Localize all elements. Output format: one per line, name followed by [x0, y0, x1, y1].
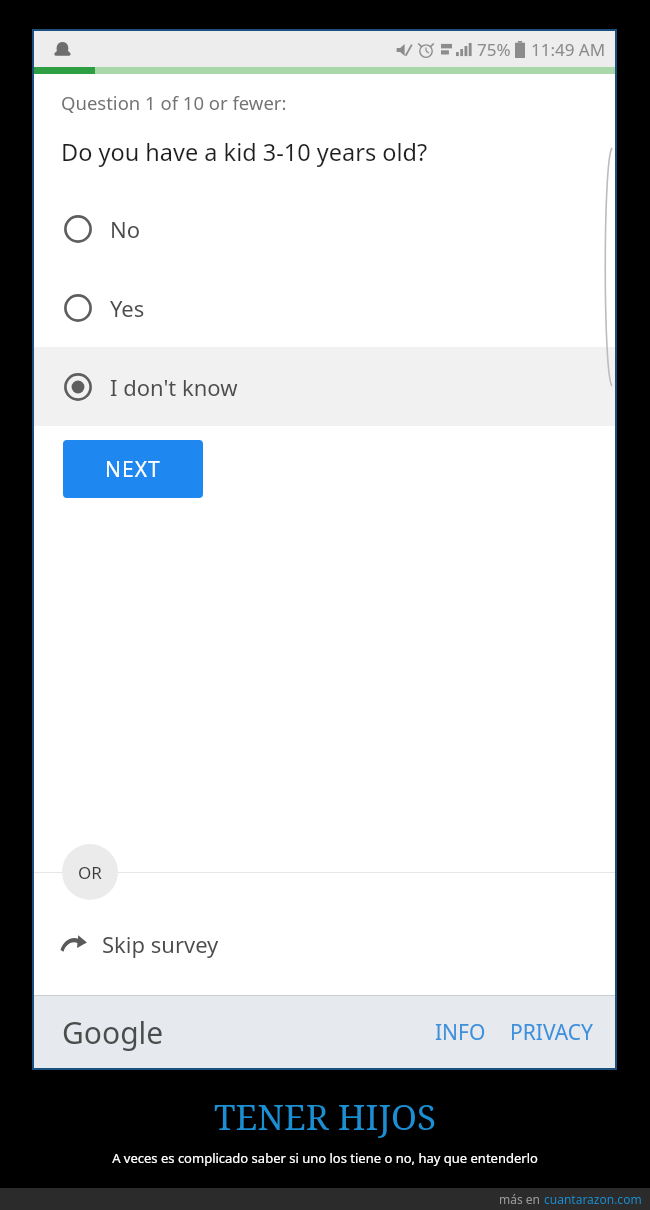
staticText: cuantarazon.com	[544, 1191, 642, 1207]
staticText: Question 1 of 10 or fewer:	[61, 90, 287, 115]
staticText: Skip survey	[102, 929, 219, 959]
button[interactable]: Google	[34, 1012, 164, 1053]
staticText: OR	[78, 861, 102, 884]
button[interactable]: Skip survey	[34, 923, 615, 965]
other: Skip survey	[59, 929, 89, 959]
staticText: Yes	[110, 293, 145, 323]
staticText: NEXT	[105, 455, 161, 484]
button[interactable]: Yes	[34, 268, 615, 347]
button[interactable]: INFO	[427, 1010, 494, 1055]
staticText: I don't know	[110, 372, 238, 402]
staticText: A veces es complicado saber si uno los t…	[112, 1149, 538, 1167]
staticText: más en	[499, 1191, 544, 1207]
button[interactable]: No	[34, 189, 615, 268]
staticText: TENER HIJOS	[214, 1093, 436, 1141]
button[interactable]: PRIVACY	[502, 1010, 601, 1055]
staticText: Do you have a kid 3-10 years old?	[61, 136, 428, 168]
staticText: 75%	[477, 38, 511, 61]
button[interactable]: NEXT	[63, 440, 203, 498]
button[interactable]: I don't know	[34, 347, 615, 426]
staticText: 11:49 AM	[531, 38, 606, 61]
staticText: No	[110, 214, 141, 244]
